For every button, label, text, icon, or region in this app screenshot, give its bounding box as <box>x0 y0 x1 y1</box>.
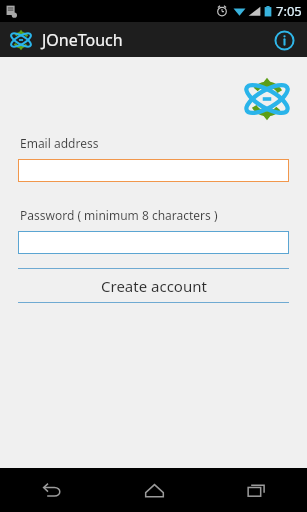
staticText: Email address <box>20 135 99 151</box>
staticText: Password ( minimum 8 characters ) <box>20 207 218 223</box>
staticText: 7:05 <box>276 2 302 20</box>
button[interactable] <box>18 159 289 182</box>
button[interactable]: Home <box>103 468 205 512</box>
button[interactable]: Create account <box>18 268 289 303</box>
button[interactable] <box>18 231 289 254</box>
button[interactable]: Info <box>269 25 299 55</box>
staticText: Create account <box>101 276 207 296</box>
staticText: JOneTouch <box>42 29 123 51</box>
button[interactable]: Back <box>0 468 103 512</box>
button[interactable]: Recent apps <box>205 468 307 512</box>
